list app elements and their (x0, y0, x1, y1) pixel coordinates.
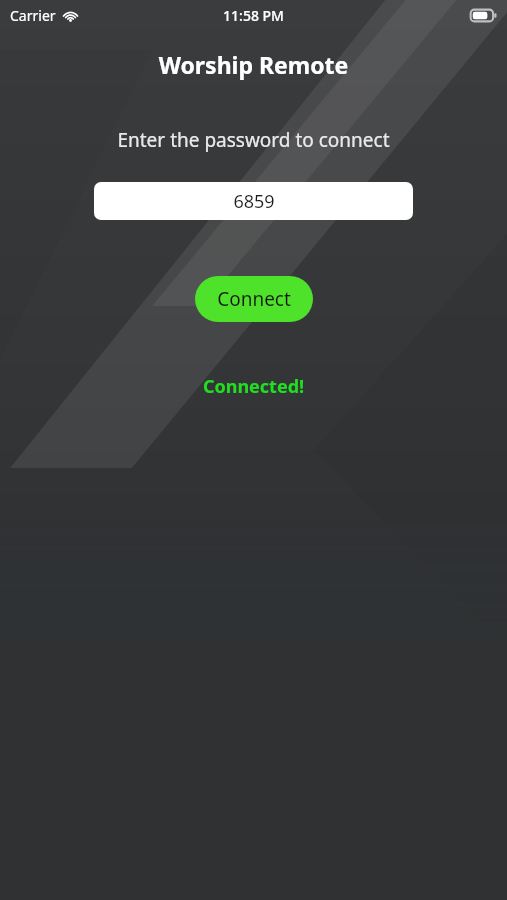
button[interactable]: Connect (195, 276, 313, 322)
staticText: Worship Remote (0, 49, 507, 80)
staticText: 11:58 PM (223, 6, 284, 25)
other: Battery (470, 9, 497, 22)
other: Wi-Fi signal (62, 9, 79, 22)
staticText: Connect (217, 286, 291, 312)
button[interactable]: Password field (94, 182, 413, 220)
staticText: Carrier (10, 6, 56, 25)
staticText: Enter the password to connect (0, 127, 507, 153)
staticText: Connected! (0, 374, 507, 399)
staticText: 6859 (233, 189, 275, 214)
